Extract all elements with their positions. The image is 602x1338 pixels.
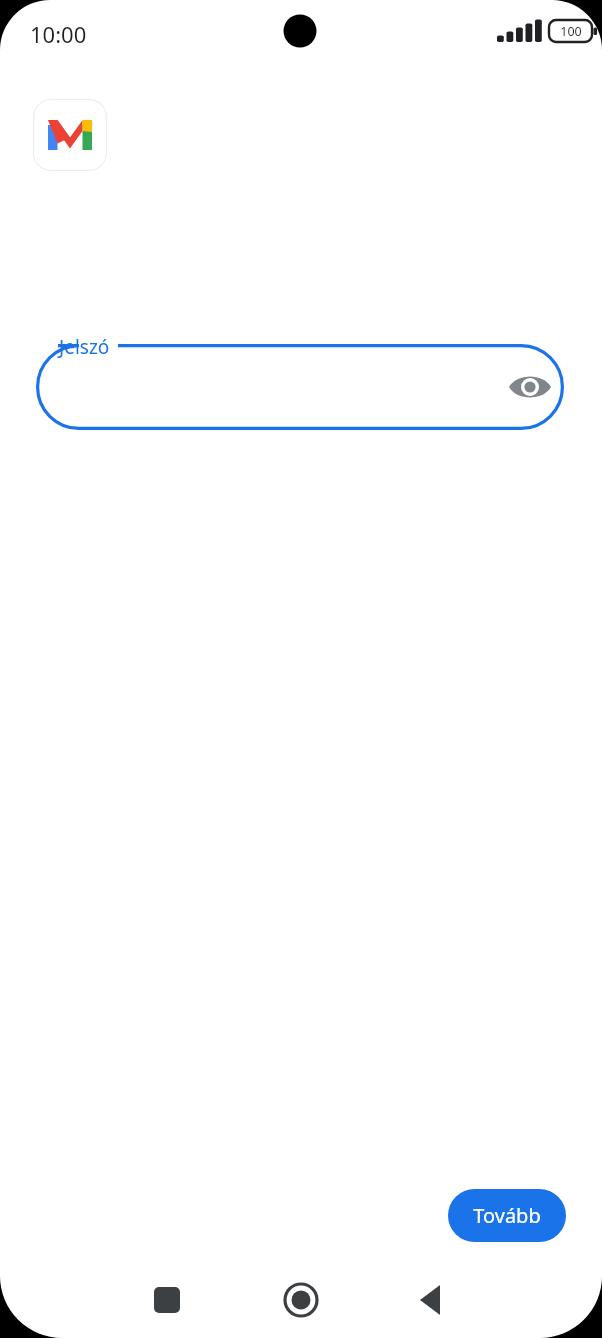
button[interactable]: Gmail — [33, 99, 107, 171]
staticText: Jelszó — [59, 334, 110, 360]
button[interactable]: Home — [261, 1260, 341, 1338]
button[interactable] — [36, 344, 564, 430]
button[interactable]: Recents — [127, 1260, 207, 1338]
button[interactable]: Tovább — [448, 1189, 566, 1242]
button[interactable]: Back — [391, 1260, 471, 1338]
staticText: 100 — [560, 23, 582, 40]
staticText: Tovább — [473, 1202, 541, 1229]
staticText: 10:00 — [30, 19, 87, 49]
